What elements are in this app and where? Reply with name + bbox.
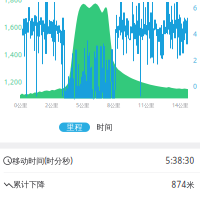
staticText: 里程: [66, 122, 82, 132]
staticText: 2: [193, 56, 197, 65]
staticText: 8公里: [107, 102, 120, 109]
staticText: 1,800: [4, 0, 22, 4]
staticText: 1,400: [4, 50, 22, 59]
staticText: 14公里: [172, 102, 188, 109]
staticText: 0公里: [14, 102, 27, 109]
staticText: 5公里: [76, 102, 89, 109]
button[interactable]: 时间: [96, 122, 113, 132]
staticText: 移动时间(时分秒): [12, 155, 72, 166]
staticText: 0: [193, 82, 197, 91]
staticText: 4: [193, 29, 197, 38]
staticText: 2公里: [45, 102, 58, 109]
staticText: 累计下降: [13, 180, 45, 189]
staticText: 11公里: [138, 102, 154, 109]
staticText: 时间: [96, 122, 112, 132]
button[interactable]: 里程: [59, 122, 90, 132]
staticText: 874米: [171, 179, 194, 190]
button[interactable]: 累计下降: [0, 173, 200, 196]
staticText: 1,600: [4, 23, 22, 32]
staticText: 5:38:30: [165, 155, 194, 166]
button[interactable]: 移动时间(时分秒): [0, 149, 200, 172]
staticText: 6: [193, 3, 197, 12]
staticText: 1,200: [4, 78, 22, 86]
